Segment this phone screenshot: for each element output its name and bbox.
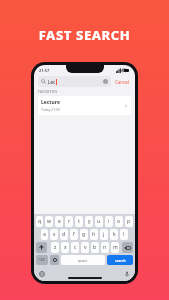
staticText: r xyxy=(68,218,71,225)
staticText: FAVORITES xyxy=(38,90,58,94)
button[interactable]: t xyxy=(75,216,83,227)
button[interactable]: m xyxy=(111,242,119,253)
staticText: y xyxy=(88,218,91,225)
button[interactable]: o xyxy=(115,216,123,227)
button[interactable]: r xyxy=(65,216,73,227)
button[interactable]: Cancel xyxy=(114,79,131,85)
staticText: f xyxy=(73,231,75,238)
button[interactable]: e xyxy=(55,216,63,227)
button[interactable]: Clear search xyxy=(103,79,108,84)
staticText: u xyxy=(97,218,101,225)
button[interactable]: y xyxy=(85,216,93,227)
staticText: search xyxy=(115,258,126,263)
button[interactable]: b xyxy=(91,242,99,253)
button[interactable]: Numbers xyxy=(36,255,48,265)
staticText: Lecture xyxy=(41,99,60,106)
button[interactable]: search xyxy=(107,255,133,265)
staticText: d xyxy=(62,231,66,238)
button[interactable]: k xyxy=(110,229,118,240)
button[interactable]: q xyxy=(36,216,43,227)
staticText: 123 xyxy=(39,258,45,262)
staticText: space xyxy=(78,258,88,263)
staticText: n xyxy=(103,244,107,251)
staticText: a xyxy=(43,231,46,238)
button[interactable]: Backspace xyxy=(122,242,133,253)
button[interactable]: i xyxy=(105,216,113,227)
button[interactable]: Shift xyxy=(36,242,47,253)
button[interactable]: Change keyboard language xyxy=(39,271,45,277)
staticText: 21:57 xyxy=(39,68,50,73)
button[interactable]: Emoji xyxy=(50,255,59,265)
staticText: z xyxy=(54,244,57,251)
staticText: Lec xyxy=(48,79,56,85)
staticText: b xyxy=(93,244,97,251)
button[interactable]: c xyxy=(71,242,79,253)
staticText: Today 21:55 xyxy=(41,107,60,112)
button[interactable]: v xyxy=(81,242,89,253)
button[interactable]: z xyxy=(51,242,59,253)
button[interactable]: g xyxy=(80,229,88,240)
staticText: j xyxy=(103,231,105,238)
staticText: Cancel xyxy=(115,79,130,85)
staticText: v xyxy=(84,244,87,251)
staticText: s xyxy=(53,231,56,238)
staticText: q xyxy=(38,218,42,225)
button[interactable]: Lecture xyxy=(38,96,131,115)
button[interactable]: a xyxy=(41,229,48,240)
button[interactable]: w xyxy=(45,216,53,227)
staticText: o xyxy=(117,218,121,225)
staticText: e xyxy=(58,218,61,225)
button[interactable]: l xyxy=(120,229,128,240)
staticText: g xyxy=(82,231,86,238)
button[interactable]: Lec xyxy=(38,76,111,87)
button[interactable]: f xyxy=(70,229,78,240)
button[interactable]: space xyxy=(61,255,105,265)
button[interactable]: x xyxy=(61,242,69,253)
staticText: m xyxy=(113,244,118,251)
staticText: p xyxy=(127,218,131,225)
staticText: t xyxy=(78,218,80,225)
staticText: k xyxy=(113,231,116,238)
staticText: l xyxy=(123,231,125,238)
staticText: c xyxy=(74,244,77,251)
button[interactable]: j xyxy=(100,229,108,240)
button[interactable]: n xyxy=(101,242,109,253)
button[interactable]: u xyxy=(95,216,103,227)
staticText: h xyxy=(92,231,96,238)
staticText: i xyxy=(108,218,110,225)
staticText: FAST SEARCH xyxy=(0,26,169,44)
button[interactable]: h xyxy=(90,229,98,240)
button[interactable]: p xyxy=(125,216,133,227)
staticText: x xyxy=(64,244,67,251)
button[interactable]: d xyxy=(60,229,68,240)
button[interactable]: Dictate xyxy=(124,271,130,277)
button[interactable]: s xyxy=(50,229,58,240)
staticText: w xyxy=(47,218,51,225)
